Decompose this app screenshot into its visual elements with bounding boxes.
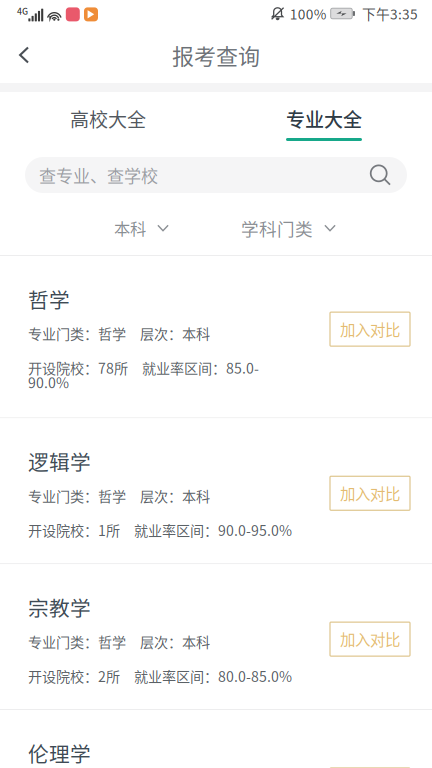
staticText: 专业门类：哲学 层次：本科 — [28, 485, 210, 506]
button[interactable]: 逻辑学 — [0, 418, 432, 564]
staticText: 专业门类：哲学 层次：本科 — [28, 631, 210, 652]
button[interactable]: 加入对比 — [330, 476, 410, 510]
staticText: 加入对比 — [340, 628, 400, 650]
staticText: 加入对比 — [340, 482, 400, 504]
button[interactable]: 学科门类 — [241, 198, 336, 250]
button[interactable]: 哲学 — [0, 256, 432, 418]
button[interactable]: 专业大全 — [216, 92, 432, 145]
staticText: 哲学 — [28, 284, 70, 314]
staticText: 学科门类 — [241, 215, 313, 241]
staticText: 开设院校：1所 就业率区间：90.0-95.0% — [28, 520, 292, 540]
button[interactable]: 查专业、查学校 — [25, 157, 407, 193]
button[interactable]: 宗教学 — [0, 564, 432, 710]
staticText: 加入对比 — [340, 318, 400, 340]
staticText: 100% — [290, 4, 327, 23]
staticText: 下午3:35 — [362, 4, 418, 23]
staticText: 宗教学 — [28, 592, 91, 622]
staticText: 查专业、查学校 — [39, 163, 158, 187]
staticText: 报考查询 — [172, 39, 260, 71]
staticText: 90.0% — [28, 372, 69, 392]
button[interactable]: 伦理学 — [0, 710, 432, 768]
staticText: 本科 — [114, 216, 146, 240]
staticText: 专业门类：哲学 层次：本科 — [28, 323, 210, 343]
button[interactable]: 加入对比 — [330, 312, 410, 346]
button[interactable]: Back — [0, 27, 48, 83]
staticText: 高校大全 — [70, 105, 146, 133]
button[interactable]: 加入对比 — [330, 622, 410, 656]
staticText: 伦理学 — [28, 738, 91, 768]
staticText: 开设院校：78所 就业率区间：85.0- — [28, 357, 259, 378]
staticText: 开设院校：2所 就业率区间：80.0-85.0% — [28, 666, 292, 686]
staticText: 专业大全 — [286, 105, 362, 133]
staticText: 逻辑学 — [28, 446, 91, 476]
staticText: 4G — [17, 5, 28, 17]
button[interactable]: 本科 — [114, 199, 169, 249]
button[interactable]: 高校大全 — [0, 92, 216, 145]
